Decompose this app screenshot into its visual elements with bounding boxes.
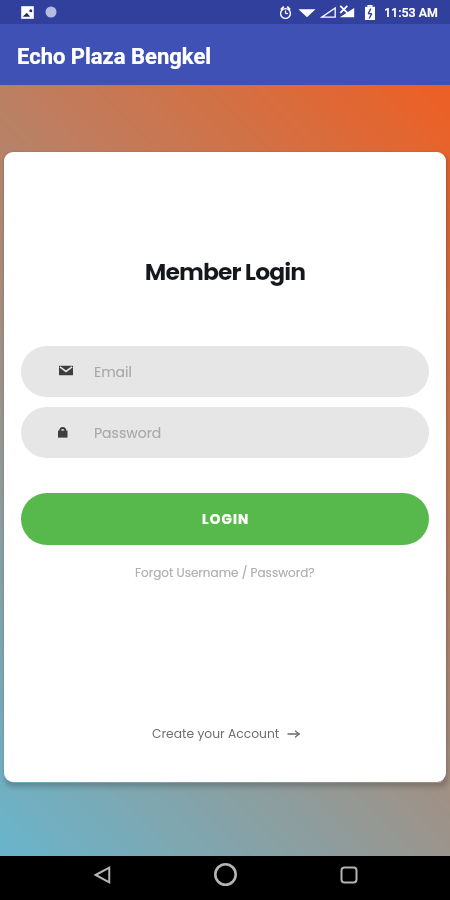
- button[interactable]: Create your Account: [4, 719, 446, 748]
- staticText: Email: [94, 362, 132, 382]
- staticText: Create your Account: [152, 725, 280, 742]
- staticText: Echo Plaza Bengkel: [17, 44, 212, 70]
- button[interactable]: Back: [80, 856, 124, 893]
- button[interactable]: LOGIN: [21, 493, 429, 545]
- button[interactable]: Home: [203, 856, 247, 893]
- staticText: LOGIN: [202, 510, 250, 529]
- staticText: 11:53 AM: [384, 5, 439, 20]
- button[interactable]: Recent apps: [327, 856, 371, 893]
- staticText: Password: [94, 423, 162, 443]
- button[interactable]: Email: [21, 346, 429, 397]
- button[interactable]: Forgot Username / Password?: [131, 560, 319, 585]
- staticText: Member Login: [4, 255, 446, 288]
- button[interactable]: Password: [21, 407, 429, 458]
